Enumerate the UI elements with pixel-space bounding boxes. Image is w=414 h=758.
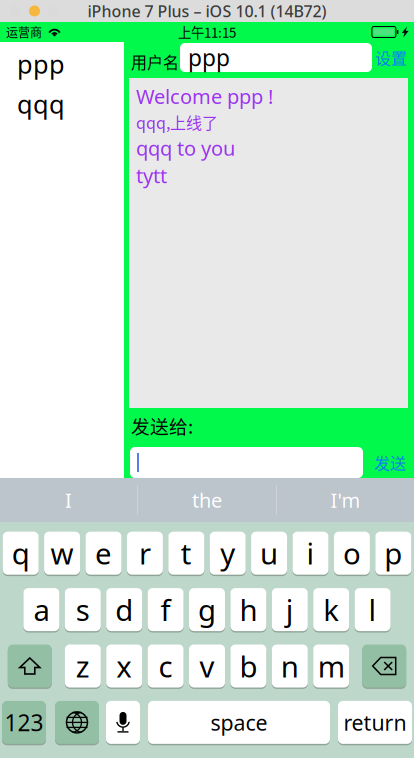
staticText: the [192,487,222,513]
staticText: w [51,534,74,573]
button[interactable]: space [148,700,330,745]
button[interactable]: q [3,531,39,575]
staticText: o [343,534,361,573]
staticText: t [181,534,192,573]
staticText: 123 [4,707,43,737]
button[interactable]: 设置 [373,43,409,72]
staticText: l [369,590,377,629]
button[interactable]: b [230,644,266,688]
staticText: 运营商 [6,23,42,41]
staticText: qqq to you [136,135,235,161]
button[interactable]: Shift [8,644,52,688]
staticText: 用户名 [131,50,179,73]
staticText: q [12,534,30,573]
button[interactable]: return [338,700,412,745]
staticText: x [116,646,132,685]
button[interactable]: h [230,587,266,632]
button[interactable]: i [292,531,328,575]
staticText: u [260,534,278,573]
button[interactable]: Delete [362,644,406,688]
staticText: a [33,590,49,629]
staticText: f [161,590,171,629]
staticText: k [323,590,339,629]
staticText: 发送给: [131,412,193,439]
button[interactable]: t [168,531,204,575]
button[interactable]: o [334,531,370,575]
staticText: r [139,534,151,573]
button[interactable]: qqq [0,84,124,124]
staticText: s [76,590,90,629]
staticText: ppp [17,47,65,81]
staticText: g [198,590,216,629]
button[interactable]: x [106,644,142,688]
button[interactable]: v [189,644,225,688]
staticText: e [95,534,112,573]
staticText: z [76,646,90,685]
staticText: h [239,590,257,629]
staticText: n [281,646,299,685]
staticText: j [286,590,294,629]
button[interactable]: l [355,587,391,632]
button[interactable]: s [65,587,101,632]
button[interactable]: Next keyboard [55,700,99,745]
staticText: b [239,646,257,685]
staticText: I [65,487,72,513]
staticText: tytt [136,162,167,189]
button[interactable]: k [313,587,349,632]
button[interactable]: c [148,644,184,688]
button[interactable]: j [272,587,308,632]
button[interactable]: a [23,587,59,632]
button[interactable]: I'm [277,478,414,522]
staticText: 设置 [375,46,407,69]
staticText: v [199,646,214,685]
staticText: p [384,534,402,573]
staticText: qqq [17,87,65,121]
staticText: 上午11:15 [178,22,236,42]
staticText: I'm [330,487,360,513]
staticText: ppp [188,42,230,72]
button[interactable]: u [251,531,287,575]
button[interactable]: p [375,531,411,575]
staticText: 发送 [374,451,406,474]
button[interactable]: e [85,531,121,575]
button[interactable]: z [65,644,101,688]
staticText: iPhone 7 Plus – iOS 10.1 (14B72) [87,0,326,22]
button[interactable]: I [0,478,137,522]
button[interactable]: 发送 [372,447,408,478]
button[interactable]: y [210,531,246,575]
button[interactable]: d [106,587,142,632]
button[interactable]: 123 [2,700,46,745]
button[interactable]: the [138,478,276,522]
button[interactable]: r [127,531,163,575]
staticText: i [306,534,314,573]
staticText: space [210,708,267,736]
button[interactable]: w [44,531,80,575]
staticText: d [115,590,133,629]
staticText: c [159,646,173,685]
staticText: Welcome ppp ! [136,83,273,110]
button[interactable]: Dictation [106,700,140,745]
staticText: m [318,646,345,685]
button[interactable]: n [272,644,308,688]
button[interactable]: g [189,587,225,632]
button[interactable]: f [148,587,184,632]
staticText: y [220,534,235,573]
button[interactable]: m [313,644,349,688]
staticText: return [343,708,406,736]
button[interactable]: ppp [0,44,124,84]
staticText: qqq,上线了 [136,111,218,134]
